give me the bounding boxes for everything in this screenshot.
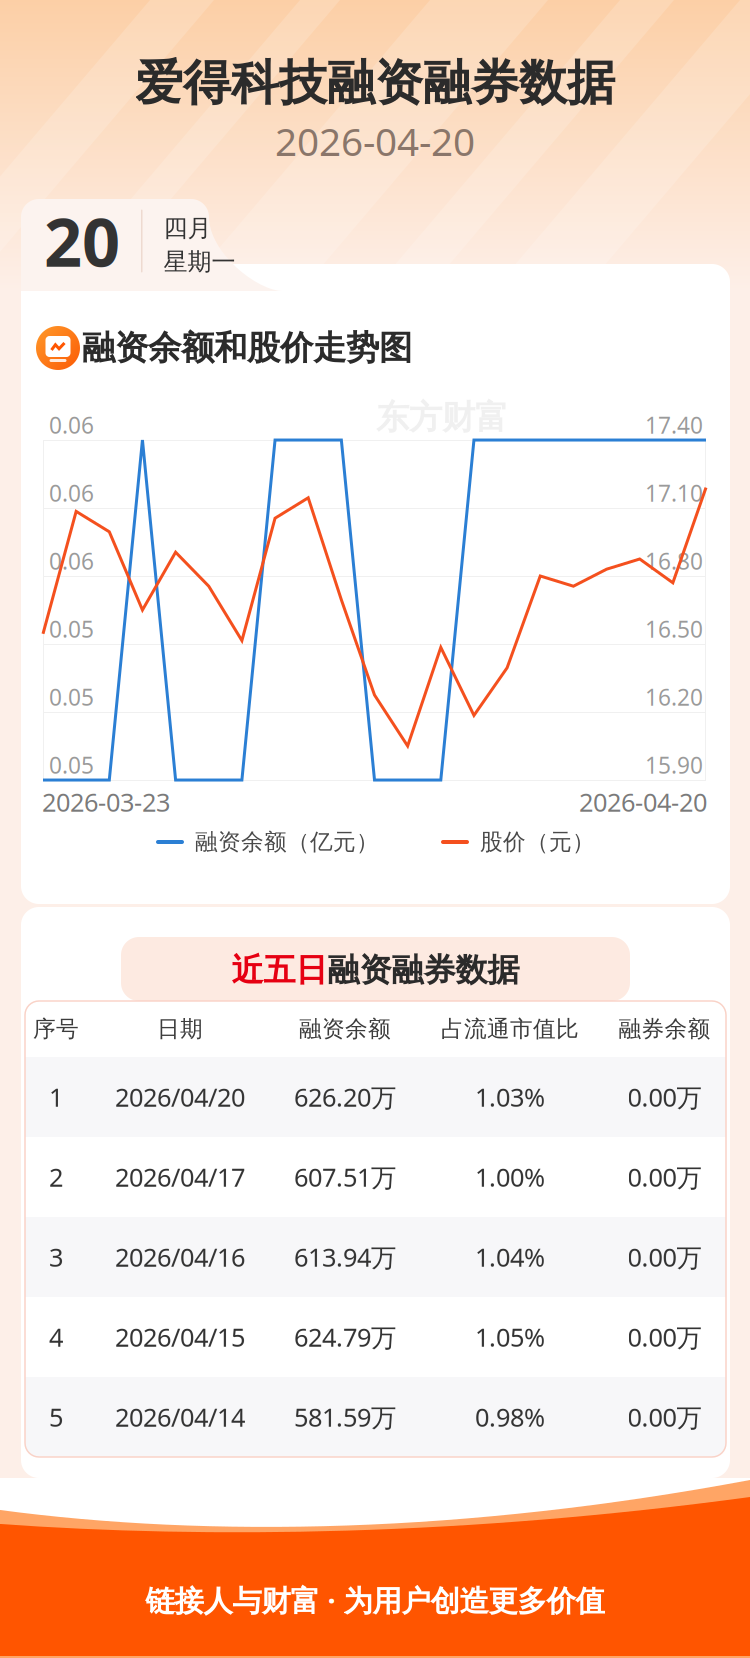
staticText: 序号 [33, 1015, 79, 1043]
staticText: 2 [49, 1160, 63, 1194]
staticText: 四月 [163, 213, 211, 243]
staticText: 链接人与财富 · 为用户创造更多价值 [145, 1580, 604, 1619]
staticText: 0.05 [49, 750, 94, 780]
staticText: 星期一 [163, 247, 235, 276]
staticText: 613.94万 [294, 1240, 396, 1274]
staticText: 607.51万 [294, 1160, 396, 1194]
staticText: 融资余额 [299, 1015, 391, 1043]
staticText: 融资余额（亿元） [195, 828, 379, 856]
staticText: 2026/04/16 [115, 1240, 245, 1274]
staticText: 626.20万 [294, 1080, 396, 1114]
staticText: 2026/04/15 [115, 1320, 245, 1354]
staticText: 日期 [157, 1015, 203, 1043]
staticText: 17.40 [645, 410, 703, 440]
staticText: 0.06 [49, 546, 94, 576]
staticText: 融资融券数据 [327, 950, 519, 990]
staticText: 0.05 [49, 682, 94, 712]
staticText: 0.05 [49, 614, 94, 644]
staticText: 16.50 [645, 614, 703, 644]
staticText: 股价（元） [480, 828, 595, 856]
staticText: 5 [49, 1400, 63, 1434]
staticText: 1.05% [475, 1320, 545, 1354]
staticText: 0.00万 [627, 1240, 701, 1274]
staticText: 0.00万 [627, 1320, 701, 1354]
staticText: 1.04% [475, 1240, 545, 1274]
staticText: 1.03% [475, 1080, 545, 1114]
staticText: 581.59万 [294, 1400, 396, 1434]
staticText: 17.10 [645, 478, 703, 508]
staticText: 融券余额 [618, 1015, 710, 1043]
staticText: 15.90 [645, 750, 703, 780]
staticText: 2026-04-20 [275, 115, 475, 167]
staticText: 0.00万 [627, 1080, 701, 1114]
staticText: 融资余额和股价走势图 [82, 327, 412, 368]
staticText: 3 [49, 1240, 63, 1274]
staticText: 爱得科技融资融券数据 [135, 53, 615, 112]
staticText: 16.20 [645, 682, 703, 712]
staticText: 4 [49, 1320, 63, 1354]
staticText: 0.00万 [627, 1400, 701, 1434]
staticText: 16.80 [645, 546, 703, 576]
staticText: 0.98% [475, 1400, 545, 1434]
staticText: 2026/04/20 [115, 1080, 245, 1114]
staticText: 2026/04/14 [115, 1400, 245, 1434]
staticText: 东方财富 [376, 397, 508, 438]
staticText: 0.00万 [627, 1160, 701, 1194]
staticText: 占流通市值比 [441, 1015, 579, 1043]
staticText: 1 [49, 1080, 63, 1114]
staticText: 624.79万 [294, 1320, 396, 1354]
staticText: 近五日 [231, 950, 327, 990]
staticText: 0.06 [49, 410, 94, 440]
staticText: 20 [44, 197, 120, 285]
staticText: 2026/04/17 [115, 1160, 245, 1194]
staticText: 2026-03-23 [42, 785, 170, 819]
staticText: 1.00% [475, 1160, 545, 1194]
staticText: 0.06 [49, 478, 94, 508]
staticText: 2026-04-20 [579, 785, 707, 819]
